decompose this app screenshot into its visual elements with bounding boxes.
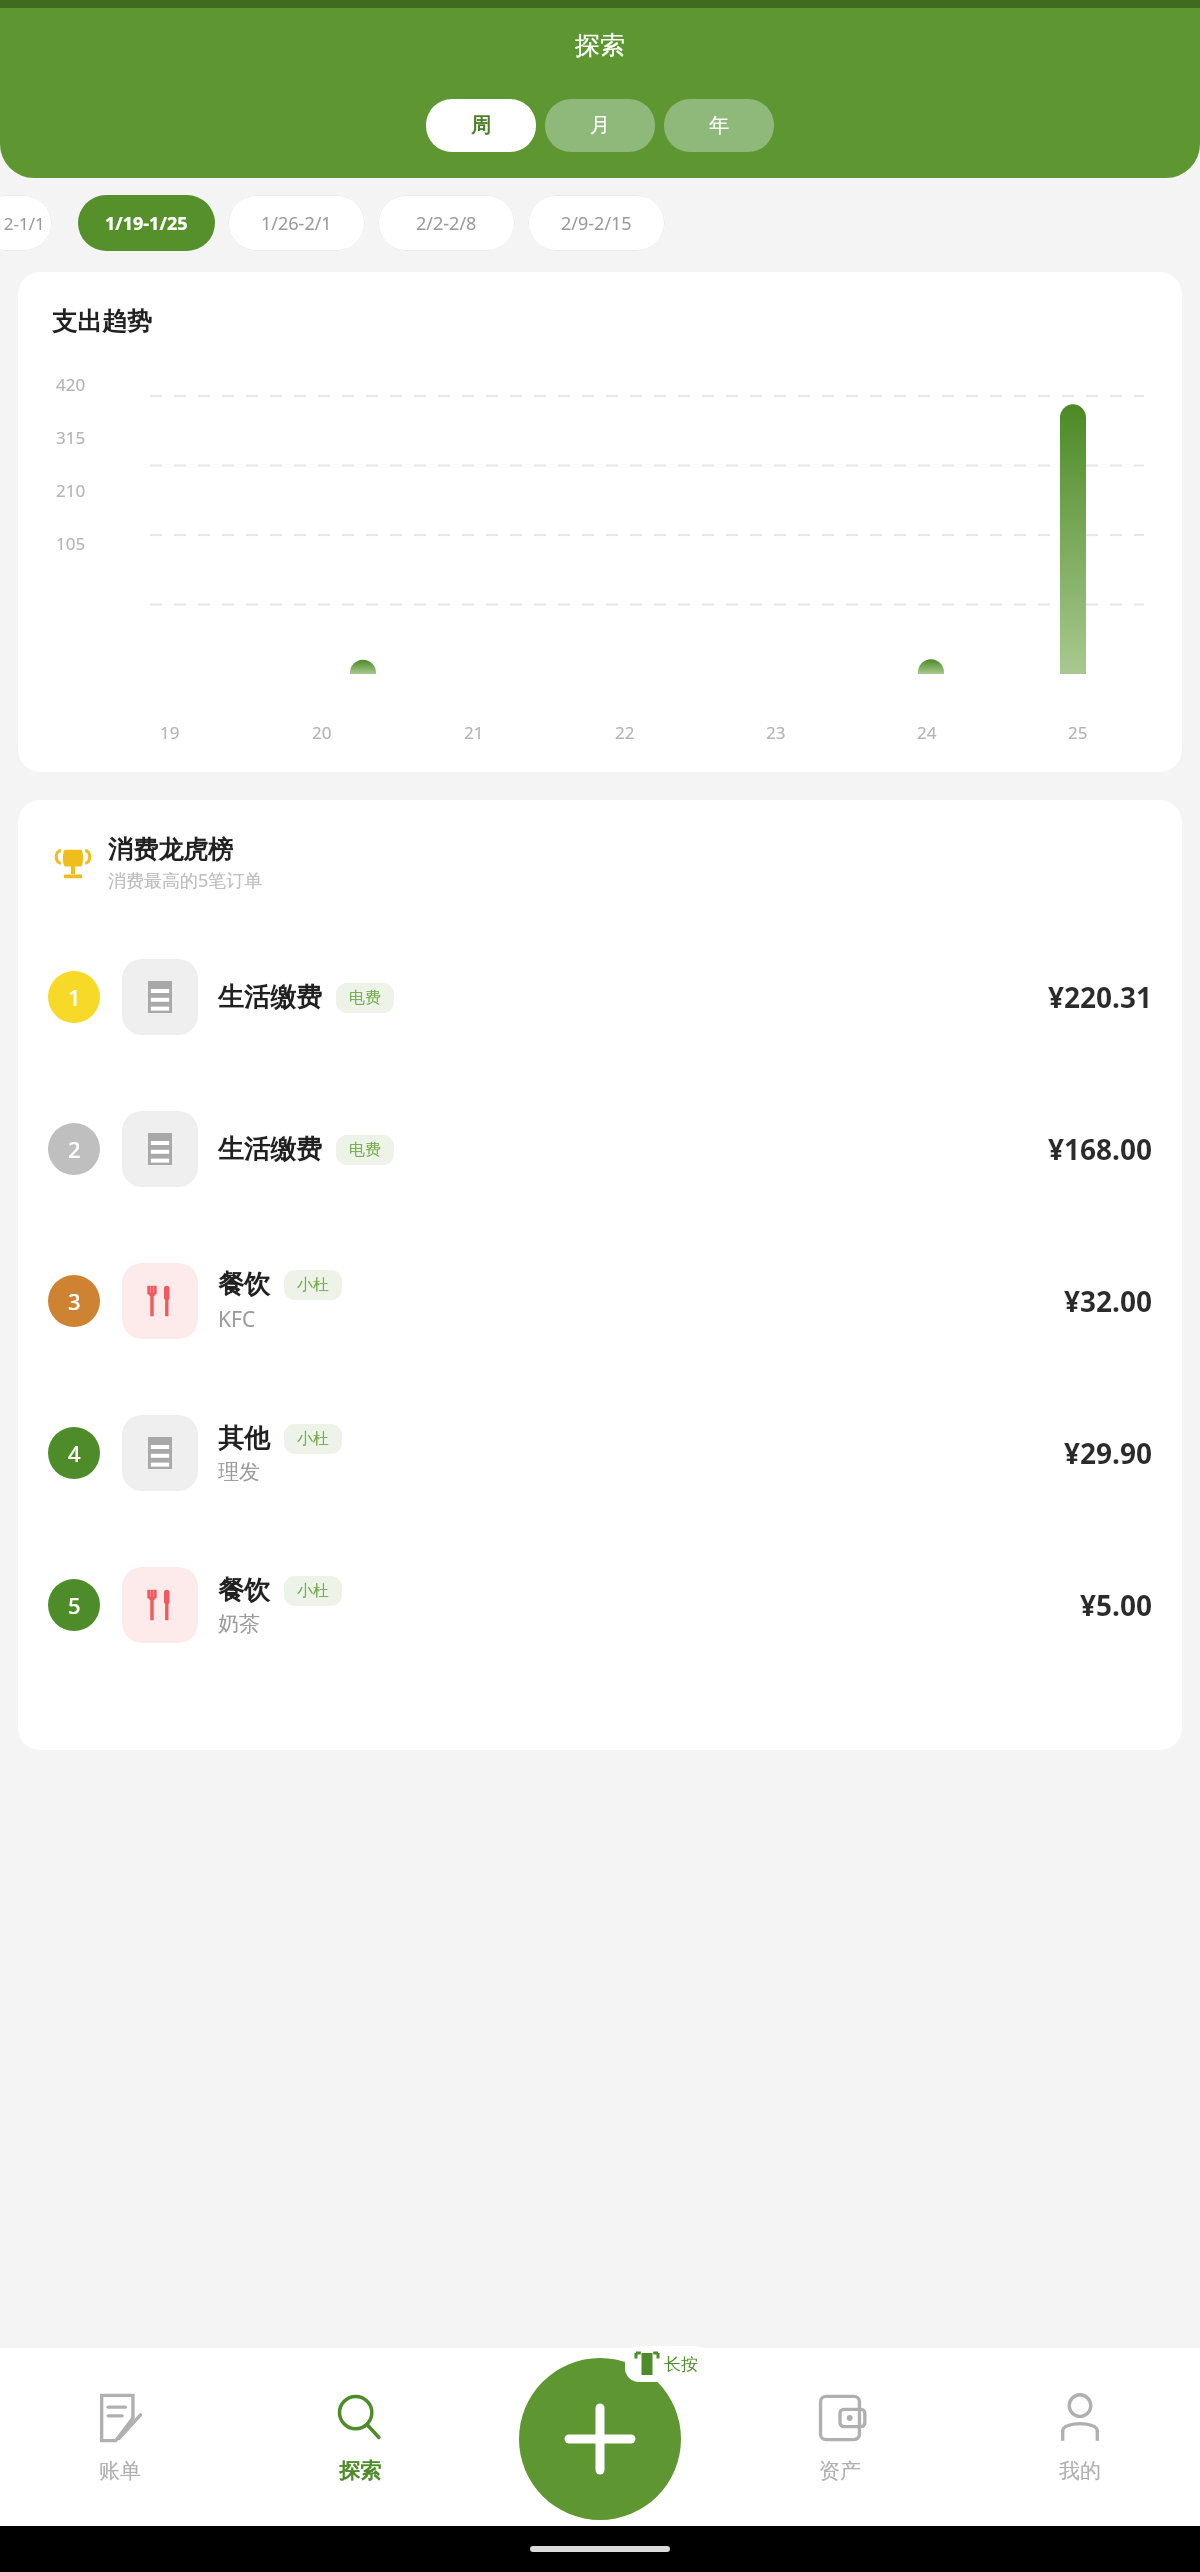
button[interactable]: 探索 — [240, 2348, 480, 2526]
button[interactable]: 3 — [18, 1225, 1182, 1377]
button[interactable]: 4 — [18, 1377, 1182, 1529]
staticText: 2/2-2/8 — [416, 211, 477, 236]
staticText: 22 — [615, 721, 635, 744]
staticText: 2 — [68, 1134, 81, 1164]
button[interactable]: 我的 — [960, 2348, 1200, 2526]
staticText: 20 — [312, 721, 332, 744]
button[interactable]: 账单 — [0, 2348, 240, 2526]
staticText: 生活缴费 — [218, 1133, 322, 1166]
button[interactable]: 月 — [545, 99, 655, 152]
button[interactable]: 2/9-2/15 — [528, 195, 665, 251]
staticText: 19 — [160, 721, 180, 744]
button[interactable]: 1 — [18, 921, 1182, 1073]
staticText: 消费最高的5笔订单 — [108, 868, 263, 893]
button[interactable]: 1/19-1/25 — [78, 195, 215, 251]
staticText: 1/12-1/18 — [0, 212, 52, 235]
staticText: 24 — [917, 721, 937, 744]
button[interactable]: 周 — [426, 99, 536, 152]
staticText: 探索 — [339, 2458, 381, 2484]
staticText: 餐饮 — [218, 1574, 270, 1607]
staticText: 长按 — [664, 2354, 698, 2375]
staticText: 21 — [464, 721, 484, 744]
staticText: 奶茶 — [218, 1611, 260, 1637]
staticText: 小杜 — [297, 1275, 329, 1295]
staticText: 其他 — [218, 1422, 270, 1455]
staticText: 我的 — [1059, 2458, 1101, 2484]
staticText: 1/26-2/1 — [261, 211, 332, 236]
staticText: ¥220.31 — [1048, 978, 1152, 1016]
staticText: ¥5.00 — [1080, 1586, 1152, 1624]
staticText: 消费龙虎榜 — [108, 834, 233, 865]
staticText: 3 — [68, 1286, 81, 1316]
staticText: ¥168.00 — [1048, 1130, 1152, 1168]
button[interactable]: 1/26-2/1 — [228, 195, 365, 251]
staticText: 月 — [590, 113, 610, 138]
staticText: 周 — [471, 113, 491, 138]
staticText: 探索 — [575, 30, 625, 61]
staticText: 资产 — [819, 2458, 861, 2484]
staticText: 电费 — [349, 988, 381, 1008]
staticText: KFC — [218, 1305, 256, 1334]
staticText: 电费 — [349, 1140, 381, 1160]
button[interactable]: 5 — [18, 1529, 1182, 1681]
button[interactable]: 资产 — [720, 2348, 960, 2526]
button[interactable]: 年 — [664, 99, 774, 152]
button[interactable]: 1/12-1/18 — [0, 195, 52, 251]
staticText: 小杜 — [297, 1581, 329, 1601]
staticText: 理发 — [218, 1459, 260, 1485]
staticText: 支出趋势 — [52, 306, 152, 337]
staticText: 账单 — [99, 2458, 141, 2484]
staticText: 1 — [68, 982, 81, 1012]
staticText: 1/19-1/25 — [105, 211, 188, 236]
staticText: 210 — [56, 479, 86, 502]
staticText: ¥29.90 — [1064, 1434, 1152, 1472]
staticText: 23 — [766, 721, 786, 744]
staticText: 2/9-2/15 — [561, 211, 632, 236]
button[interactable]: 2 — [18, 1073, 1182, 1225]
button[interactable]: 添加 — [519, 2358, 681, 2520]
staticText: 年 — [709, 113, 729, 138]
staticText: ¥32.00 — [1064, 1282, 1152, 1320]
staticText: 生活缴费 — [218, 981, 322, 1014]
staticText: 105 — [56, 532, 86, 555]
staticText: 小杜 — [297, 1429, 329, 1449]
staticText: 25 — [1068, 721, 1088, 744]
button[interactable]: 2/2-2/8 — [378, 195, 515, 251]
staticText: 餐饮 — [218, 1268, 270, 1301]
staticText: 5 — [68, 1590, 81, 1620]
staticText: 4 — [68, 1438, 81, 1468]
button[interactable]: 长按 — [636, 2353, 698, 2375]
staticText: 315 — [56, 426, 86, 449]
staticText: 420 — [56, 373, 86, 396]
